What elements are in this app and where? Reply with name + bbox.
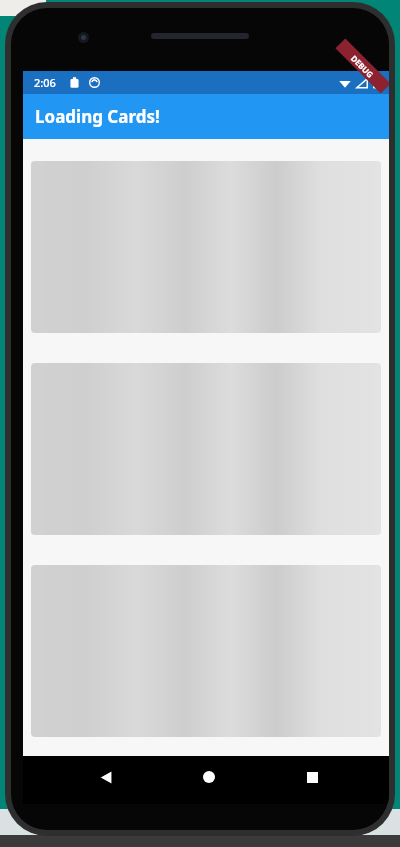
button[interactable]: Back bbox=[89, 760, 123, 794]
button[interactable] bbox=[31, 363, 381, 535]
staticText: Loading Cards! bbox=[35, 105, 160, 128]
staticText: 2:06 bbox=[34, 75, 56, 90]
staticText: DEBUG bbox=[349, 53, 376, 80]
button[interactable]: Recent apps bbox=[295, 760, 329, 794]
button[interactable]: Home bbox=[192, 760, 226, 794]
button[interactable] bbox=[31, 565, 381, 737]
button[interactable] bbox=[31, 161, 381, 333]
